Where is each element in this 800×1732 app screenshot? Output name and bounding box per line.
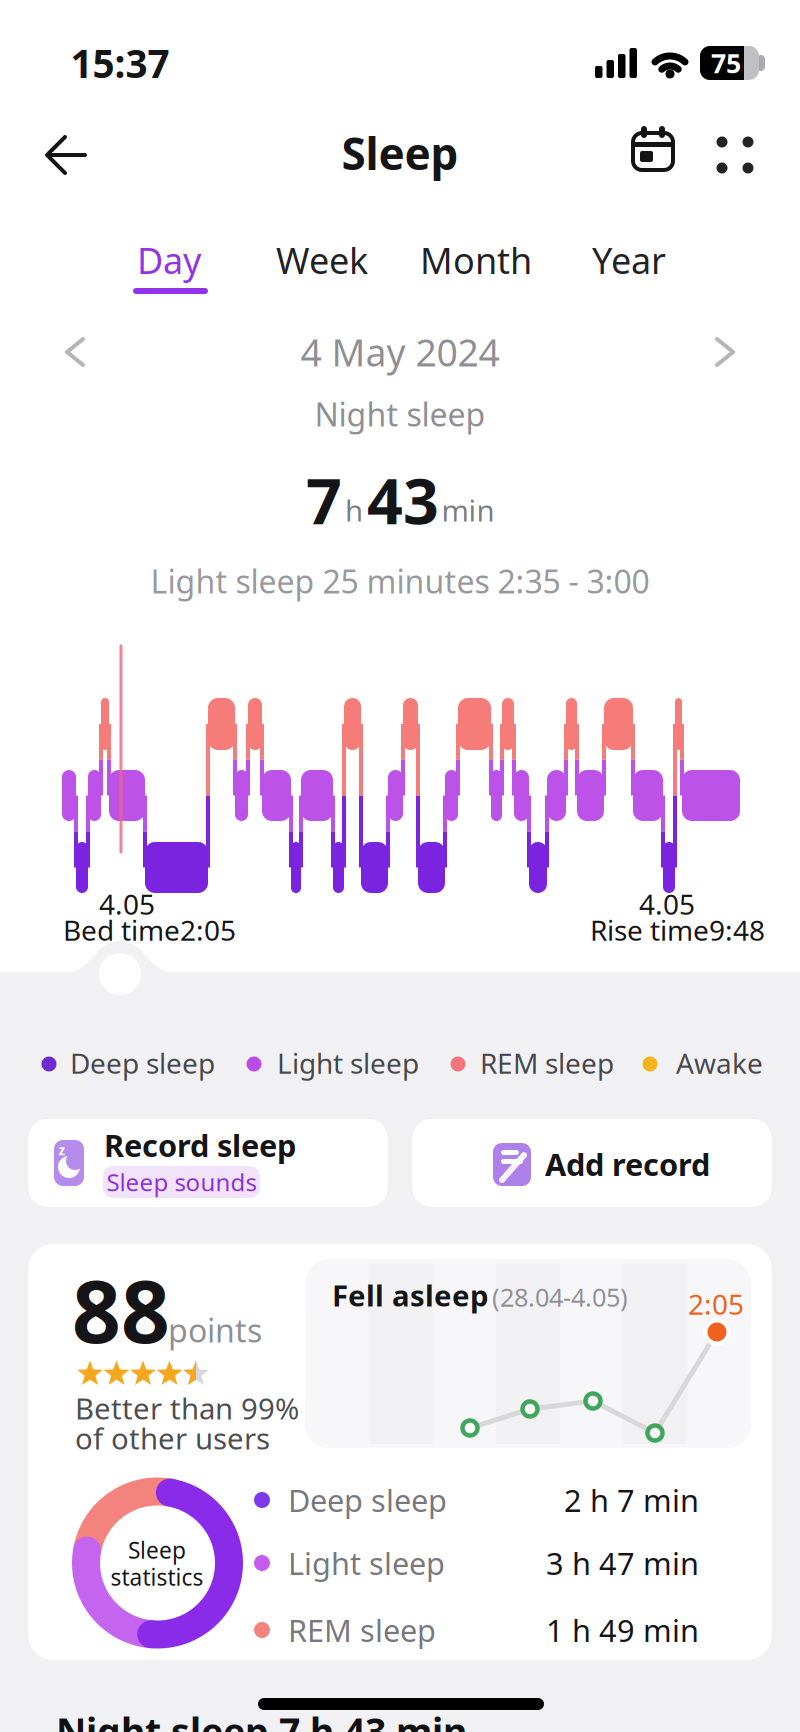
staticText: 2:05 — [688, 1285, 744, 1323]
button[interactable]: Week — [247, 234, 397, 286]
staticText: 75 — [711, 45, 741, 81]
staticText: Sleep — [128, 1535, 186, 1565]
staticText: Bed time2:05 — [63, 911, 236, 949]
button[interactable] — [43, 135, 89, 175]
button[interactable]: Day — [94, 234, 244, 286]
button[interactable]: Year — [554, 234, 704, 286]
staticText: Add record — [545, 1144, 710, 1184]
staticText: z — [58, 1141, 65, 1159]
staticText: 1 h 49 min — [546, 1610, 699, 1650]
staticText: 43 — [367, 458, 439, 542]
staticText: 88 — [72, 1253, 170, 1367]
staticText: of other users — [75, 1418, 270, 1457]
staticText: REM sleep — [480, 1044, 614, 1082]
staticText: 4.05 — [99, 885, 155, 923]
staticText: (28.04-4.05) — [492, 1280, 628, 1314]
button[interactable] — [632, 126, 680, 178]
staticText: Night sleep 7 h 43 min — [56, 1706, 467, 1732]
button[interactable] — [63, 337, 89, 369]
staticText: Sleep sounds — [106, 1166, 256, 1198]
staticText: Light sleep 25 minutes 2:35 - 3:00 — [150, 560, 649, 602]
button[interactable]: Add record — [412, 1119, 772, 1207]
staticText: h — [345, 490, 363, 529]
staticText: 2 h 7 min — [564, 1480, 699, 1520]
staticText: Day — [137, 236, 201, 284]
staticText: Week — [276, 236, 368, 284]
button[interactable]: z — [28, 1119, 388, 1207]
staticText: Fell asleep — [332, 1275, 489, 1314]
staticText: Night sleep — [314, 393, 485, 435]
staticText: Record sleep — [104, 1125, 296, 1165]
staticText: points — [168, 1309, 262, 1351]
staticText: Rise time9:48 — [590, 911, 765, 949]
staticText: Deep sleep — [288, 1480, 447, 1520]
staticText: Sleep — [341, 124, 458, 182]
staticText: Year — [592, 236, 666, 284]
staticText: Month — [420, 236, 532, 284]
button[interactable] — [711, 337, 737, 369]
staticText: Light sleep — [277, 1044, 419, 1082]
staticText: 7 — [306, 458, 342, 542]
staticText: statistics — [110, 1562, 203, 1592]
button[interactable]: Month — [401, 234, 551, 286]
staticText: Awake — [676, 1044, 763, 1082]
staticText: Better than 99% — [75, 1388, 299, 1427]
staticText: Light sleep — [288, 1543, 445, 1583]
staticText: 3 h 47 min — [546, 1543, 699, 1583]
staticText: Deep sleep — [70, 1044, 215, 1082]
button[interactable] — [715, 135, 755, 175]
staticText: 4 May 2024 — [300, 327, 499, 377]
staticText: 4.05 — [639, 885, 695, 923]
staticText: min — [441, 490, 494, 529]
staticText: 15:37 — [70, 37, 169, 89]
staticText: REM sleep — [288, 1610, 436, 1650]
